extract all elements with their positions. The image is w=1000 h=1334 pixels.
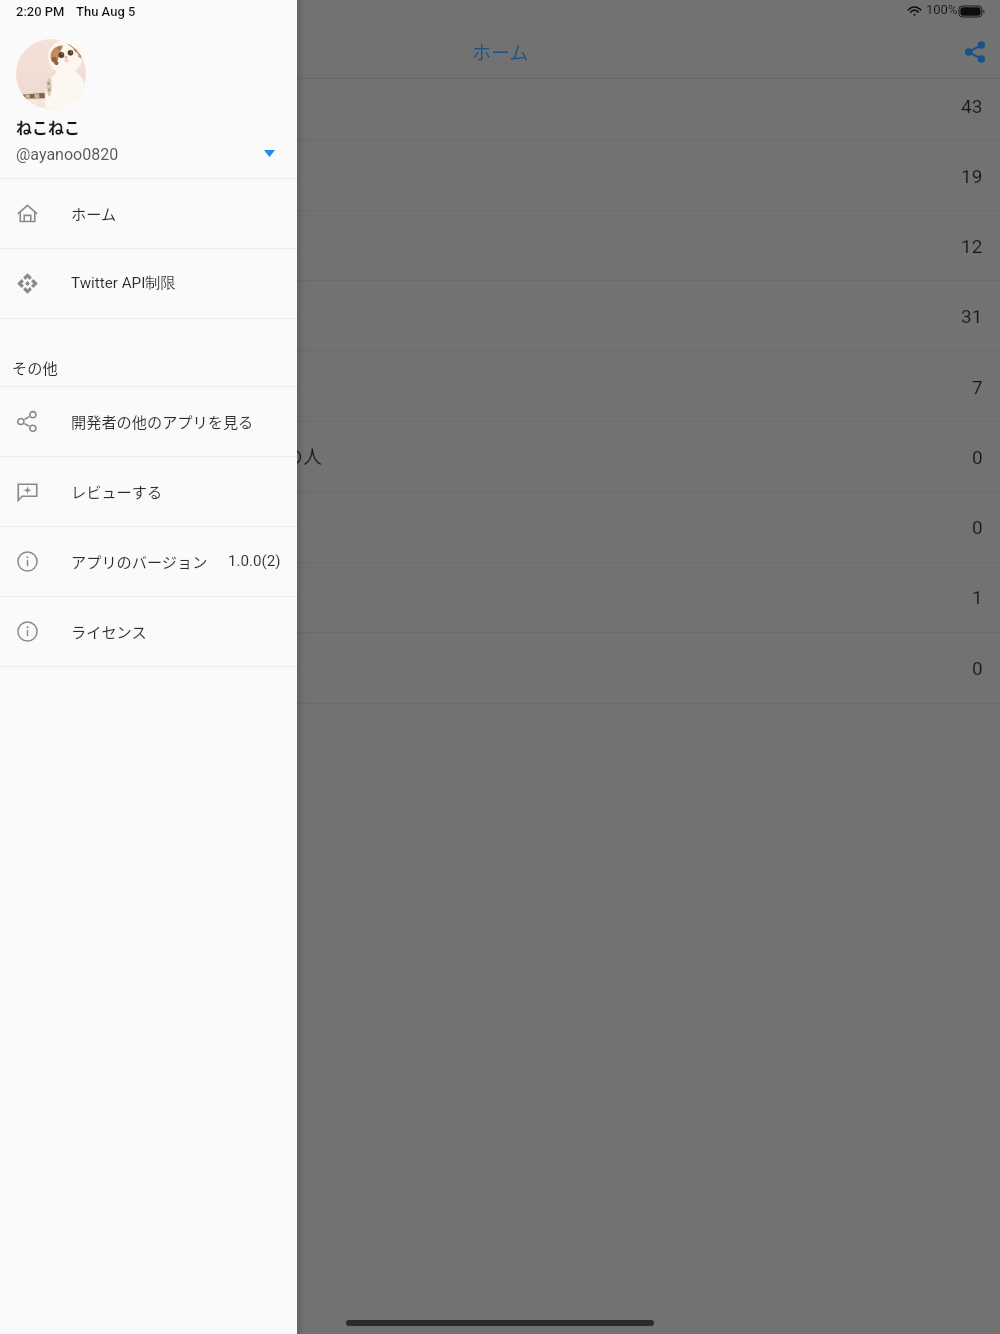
- staticText: 0: [972, 516, 983, 538]
- button[interactable]: 開発者の他のアプリを見る: [0, 387, 297, 456]
- button[interactable]: [0, 211, 1000, 281]
- staticText: ライセンス: [71, 620, 147, 642]
- staticText: 開発者の他のアプリを見る: [71, 410, 254, 432]
- staticText: 31: [961, 305, 983, 327]
- staticText: 1.0.0(2): [228, 552, 281, 570]
- staticText: ホーム: [71, 202, 117, 224]
- staticText: Twitter API制限: [71, 273, 176, 292]
- button[interactable]: [0, 79, 1000, 140]
- staticText: 1: [972, 586, 983, 608]
- staticText: Thu Aug 5: [76, 4, 136, 19]
- staticText: その他: [12, 356, 58, 378]
- button[interactable]: [0, 563, 1000, 633]
- button[interactable]: [0, 351, 1000, 422]
- button[interactable]: [0, 492, 1000, 563]
- staticText: 12: [961, 235, 983, 257]
- staticText: 43: [961, 95, 983, 117]
- staticText: 7: [972, 376, 983, 398]
- staticText: 19: [961, 165, 983, 187]
- button[interactable]: ねこねこ: [0, 26, 297, 178]
- button[interactable]: Twitter API制限: [0, 249, 297, 318]
- staticText: ホーム: [472, 38, 529, 66]
- button[interactable]: [0, 140, 1000, 211]
- staticText: レビューする: [71, 480, 163, 502]
- button[interactable]: [0, 281, 1000, 351]
- staticText: アプリのバージョン: [71, 550, 208, 572]
- button[interactable]: ホーム: [0, 179, 297, 248]
- staticText: 2:20 PM: [16, 4, 65, 19]
- button[interactable]: レビューする: [0, 457, 297, 526]
- button[interactable]: ライセンス: [0, 597, 297, 666]
- button[interactable]: [0, 422, 1000, 492]
- staticText: ねこねこ: [16, 115, 81, 138]
- staticText: 0: [972, 657, 983, 679]
- button[interactable]: Share: [955, 32, 995, 72]
- staticText: 0: [972, 446, 983, 468]
- button[interactable]: アプリのバージョン: [0, 527, 297, 596]
- staticText: 100%: [926, 2, 958, 17]
- button[interactable]: [0, 633, 1000, 704]
- staticText: @ayanoo0820: [16, 145, 119, 164]
- staticText: 以上の人: [246, 442, 323, 470]
